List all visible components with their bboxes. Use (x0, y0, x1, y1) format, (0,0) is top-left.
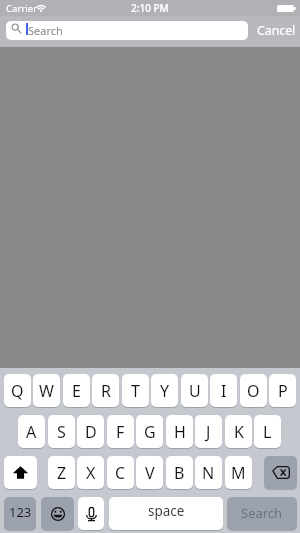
staticText: Y (160, 380, 170, 402)
button[interactable]: T (122, 374, 149, 407)
button[interactable]: R (92, 374, 119, 407)
staticText: Search (241, 504, 283, 522)
staticText: U (189, 380, 201, 402)
staticText: 2:10 PM (131, 1, 169, 15)
button[interactable]: Delete (264, 456, 297, 489)
button[interactable]: K (225, 415, 252, 448)
staticText: G (144, 421, 156, 443)
staticText: Search (28, 23, 63, 38)
button[interactable]: Dictate (78, 497, 104, 530)
button[interactable]: L (254, 415, 281, 448)
button[interactable]: Shift (4, 456, 37, 489)
button[interactable]: P (269, 374, 296, 407)
button[interactable]: Y (151, 374, 178, 407)
staticText: R (101, 380, 111, 402)
button[interactable]: 123 (4, 497, 36, 530)
staticText: W (39, 380, 54, 402)
staticText: H (174, 421, 186, 443)
button[interactable]: N (195, 456, 222, 489)
staticText: Q (11, 380, 24, 402)
button[interactable]: H (166, 415, 193, 448)
staticText: A (26, 421, 37, 443)
staticText: K (234, 421, 244, 443)
button[interactable]: E (63, 374, 90, 407)
button[interactable]: J (195, 415, 222, 448)
button[interactable]: S (48, 415, 75, 448)
button[interactable]: B (166, 456, 193, 489)
button[interactable]: I (210, 374, 237, 407)
button[interactable]: F (107, 415, 134, 448)
button[interactable]: V (136, 456, 163, 489)
staticText: D (85, 421, 97, 443)
button[interactable]: A (18, 415, 45, 448)
button[interactable]: X (77, 456, 104, 489)
staticText: B (174, 462, 185, 484)
button[interactable]: Z (48, 456, 75, 489)
button[interactable]: Search (6, 21, 248, 40)
button[interactable]: C (107, 456, 134, 489)
staticText: C (115, 462, 126, 484)
staticText: Cancel (257, 22, 296, 39)
button[interactable]: M (225, 456, 252, 489)
staticText: M (231, 462, 246, 484)
staticText: V (145, 462, 155, 484)
staticText: X (86, 462, 96, 484)
button[interactable]: W (33, 374, 60, 407)
button[interactable]: D (77, 415, 104, 448)
staticText: space (148, 502, 185, 520)
button[interactable]: Q (4, 374, 31, 407)
staticText: L (263, 421, 272, 443)
button[interactable]: G (136, 415, 163, 448)
button[interactable]: space (109, 497, 223, 530)
staticText: 123 (9, 503, 32, 521)
staticText: F (116, 421, 125, 443)
button[interactable]: Emoji (41, 497, 74, 530)
staticText: N (202, 462, 215, 484)
staticText: I (221, 380, 227, 402)
staticText: Carrier (6, 2, 38, 15)
staticText: Z (57, 462, 67, 484)
staticText: P (278, 380, 288, 402)
staticText: J (206, 421, 211, 443)
staticText: E (72, 380, 81, 402)
button[interactable]: Search (227, 497, 297, 530)
button[interactable]: U (181, 374, 208, 407)
staticText: S (57, 421, 66, 443)
staticText: O (247, 380, 260, 402)
button[interactable]: O (240, 374, 267, 407)
staticText: T (131, 380, 140, 402)
button[interactable]: Cancel (250, 16, 300, 47)
